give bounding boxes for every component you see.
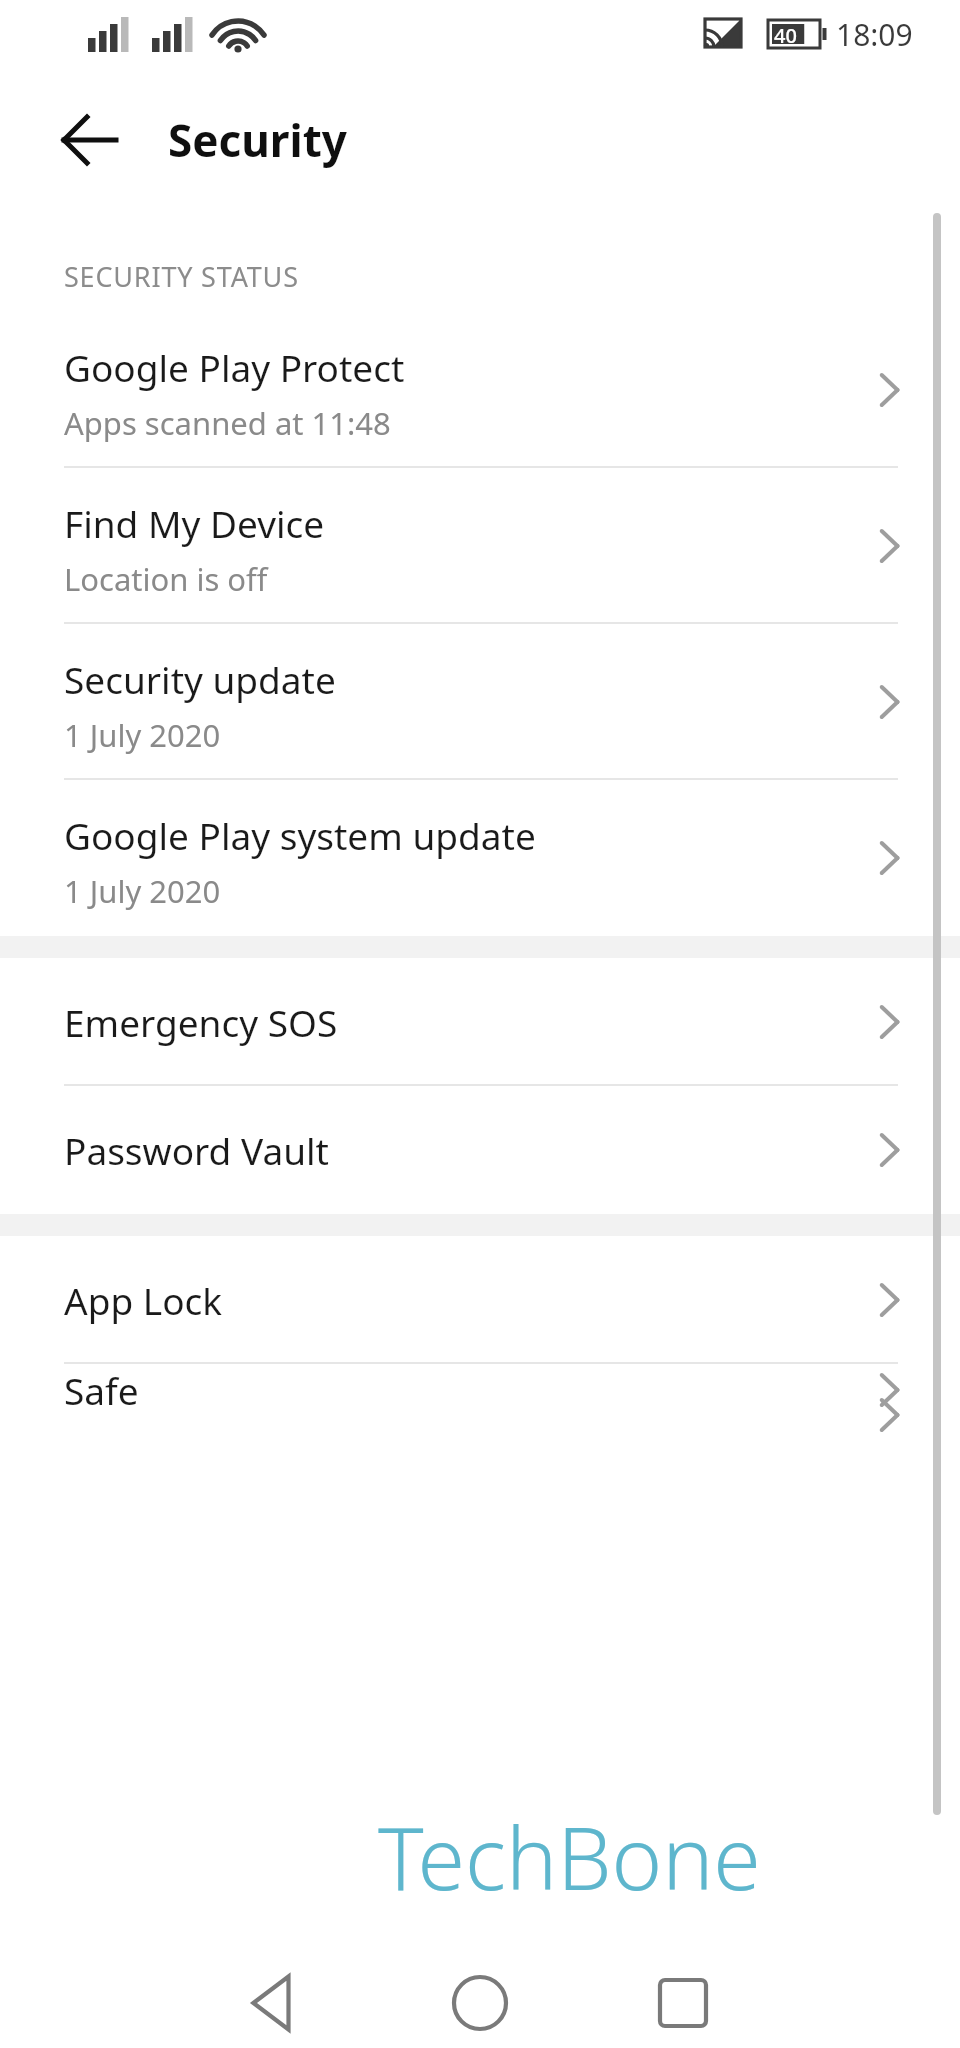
staticText: 40 bbox=[774, 22, 797, 49]
button[interactable]: Recent apps bbox=[643, 1963, 723, 2043]
staticText: Password Vault bbox=[64, 1125, 329, 1175]
button[interactable]: Find My Device bbox=[0, 468, 960, 624]
staticText: Emergency SOS bbox=[64, 997, 338, 1047]
staticText: SECURITY STATUS bbox=[64, 258, 299, 295]
staticText: Apps scanned at 11:48 bbox=[64, 402, 391, 444]
staticText: TechBone bbox=[378, 1798, 761, 1915]
button[interactable]: Back bbox=[48, 92, 144, 188]
button[interactable]: Password Vault bbox=[0, 1086, 960, 1214]
staticText: Find My Device bbox=[64, 498, 325, 548]
staticText: Security update bbox=[64, 654, 336, 704]
staticText: Google Play system update bbox=[64, 810, 536, 860]
staticText: 1 July 2020 bbox=[64, 714, 221, 756]
staticText: 18:09 bbox=[836, 14, 913, 55]
button[interactable]: Back bbox=[232, 1963, 312, 2043]
button[interactable]: Safe bbox=[0, 1364, 960, 1415]
button[interactable]: Security update bbox=[0, 624, 960, 780]
staticText: 1 July 2020 bbox=[64, 870, 221, 912]
staticText: Location is off bbox=[64, 558, 268, 600]
button[interactable]: App Lock bbox=[0, 1236, 960, 1364]
button[interactable]: Google Play Protect bbox=[0, 312, 960, 468]
staticText: Safe bbox=[64, 1365, 139, 1415]
button[interactable]: Emergency SOS bbox=[0, 958, 960, 1086]
button[interactable]: Home bbox=[440, 1963, 520, 2043]
staticText: Google Play Protect bbox=[64, 342, 405, 392]
button[interactable]: Google Play system update bbox=[0, 780, 960, 936]
staticText: App Lock bbox=[64, 1275, 223, 1325]
staticText: Security bbox=[168, 110, 347, 170]
